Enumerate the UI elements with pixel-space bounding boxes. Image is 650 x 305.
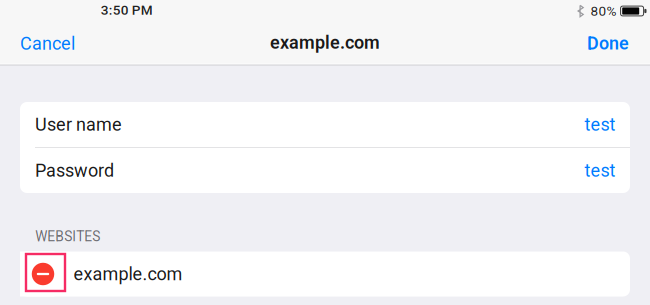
staticText: example.com <box>270 32 380 53</box>
staticText: Cancel <box>20 33 75 54</box>
button[interactable]: Cancel <box>0 22 100 65</box>
staticText: example.com <box>73 263 182 285</box>
staticText: 3:50 PM <box>101 2 153 18</box>
staticText: Done <box>587 33 629 54</box>
staticText: WEBSITES <box>35 228 100 245</box>
staticText: 80% <box>590 3 616 19</box>
button[interactable]: Password <box>20 148 630 193</box>
staticText: test <box>584 114 615 135</box>
button[interactable]: Done <box>561 22 650 65</box>
staticText: test <box>584 160 615 181</box>
staticText: User name <box>35 114 122 135</box>
staticText: Password <box>35 160 114 181</box>
button[interactable]: example.com <box>20 251 630 296</box>
button[interactable]: Remove website <box>26 251 60 296</box>
button[interactable]: User name <box>20 102 630 147</box>
